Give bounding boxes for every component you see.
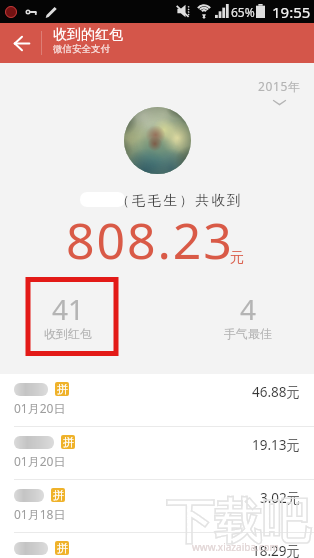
staticText: 19.13元	[252, 436, 301, 454]
staticText: 收到红包	[44, 326, 92, 341]
staticText: 下载吧	[166, 492, 310, 552]
staticText: 01月18日	[14, 506, 66, 522]
staticText: 手气最佳	[224, 326, 272, 341]
staticText: www.xiazaiba.com	[192, 540, 279, 554]
staticText: 拼	[53, 488, 64, 502]
staticText: 拼	[63, 435, 74, 449]
button[interactable]: 拼	[0, 427, 314, 479]
staticText: 微信安全支付	[53, 43, 110, 55]
staticText: 01月20日	[14, 400, 66, 416]
staticText: 4	[240, 290, 257, 328]
staticText: 65%	[231, 4, 255, 20]
staticText: 3.02元	[260, 489, 301, 507]
button[interactable]: 拼	[0, 533, 314, 558]
staticText: （毛毛生）共收到	[116, 192, 244, 209]
staticText: 46.88元	[252, 383, 301, 401]
button[interactable]: 41	[28, 290, 108, 343]
button[interactable]: 拼	[0, 374, 314, 426]
staticText: 拼	[57, 541, 68, 555]
button[interactable]: Back	[0, 23, 41, 63]
staticText: 2015年	[258, 78, 301, 94]
staticText: 01月20日	[14, 453, 66, 469]
staticText: 808.23	[66, 206, 234, 274]
button[interactable]: 4	[208, 290, 288, 343]
button[interactable]: 拼	[0, 480, 314, 532]
staticText: 19:55	[272, 2, 311, 22]
button[interactable]: 2015年	[258, 78, 301, 106]
staticText: 18.29元	[252, 542, 301, 558]
staticText: 41	[52, 290, 85, 328]
staticText: 元	[230, 249, 244, 267]
staticText: 收到的红包	[53, 26, 123, 44]
staticText: 拼	[57, 382, 68, 396]
